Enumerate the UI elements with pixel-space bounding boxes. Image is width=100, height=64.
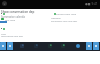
button[interactable]: Power bbox=[93, 42, 99, 50]
button[interactable]: Files bbox=[0, 42, 6, 50]
staticText: Heading bbox=[51, 16, 61, 19]
button[interactable]: Music bbox=[61, 44, 65, 48]
button[interactable]: Application menu bbox=[2, 1, 7, 6]
button[interactable]: Terminal bbox=[20, 44, 24, 48]
staticText: Show conversation dep bbox=[1, 10, 35, 14]
button[interactable]: Editor bbox=[34, 44, 38, 48]
staticText: content item here bbox=[56, 12, 77, 15]
button[interactable]: Chat bbox=[76, 44, 80, 48]
staticText: secondary info line text bbox=[51, 19, 78, 22]
staticText: Title bbox=[1, 32, 6, 35]
staticText: text here bbox=[5, 18, 16, 21]
staticText: Summarize calenda bbox=[1, 15, 25, 19]
button[interactable]: Settings bbox=[86, 42, 92, 50]
staticText: ●■ 9:41 bbox=[85, 2, 98, 6]
button[interactable]: Browser bbox=[7, 42, 13, 50]
staticText: descriptive row text bbox=[1, 34, 23, 37]
button[interactable]: Mail bbox=[48, 44, 52, 48]
